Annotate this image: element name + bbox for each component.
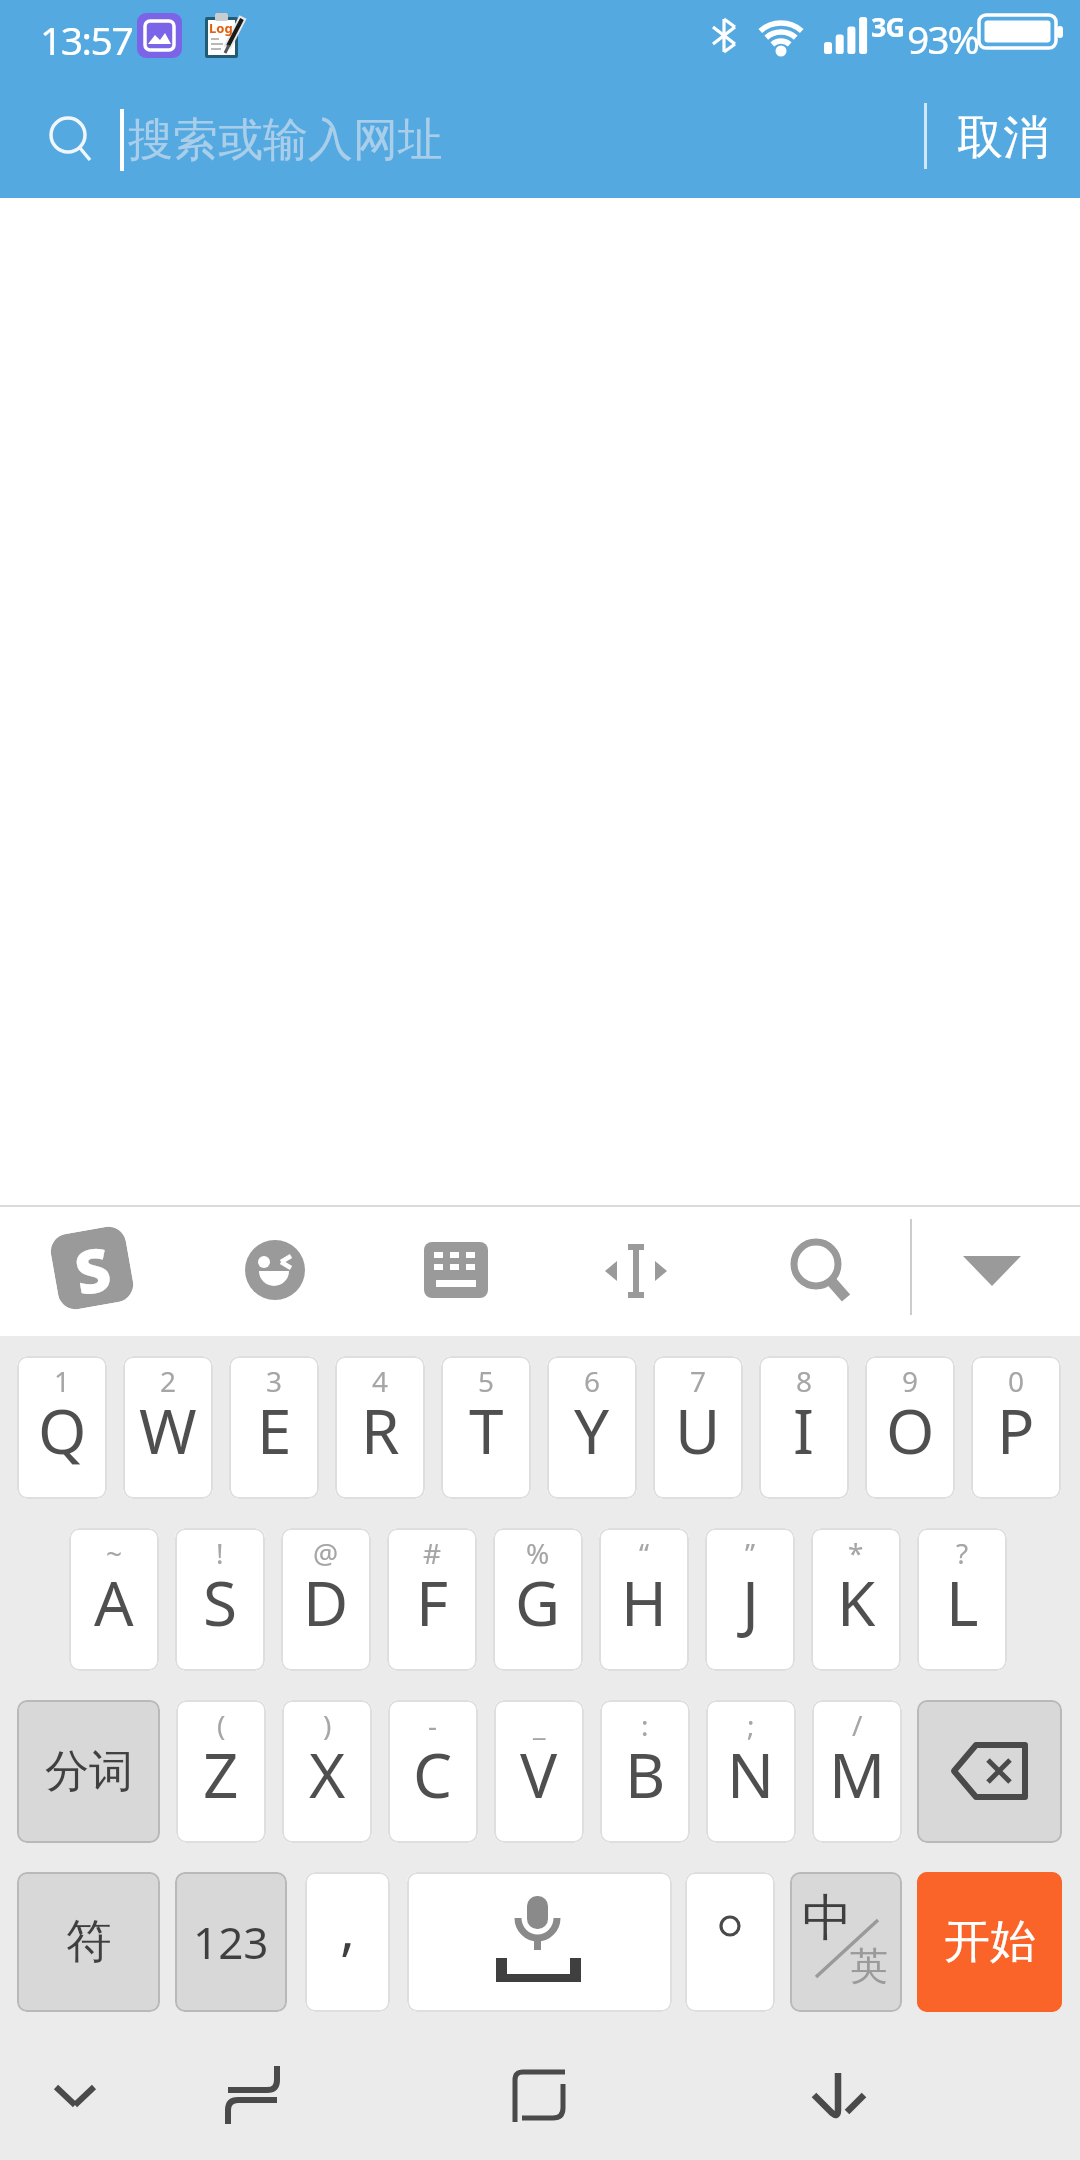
staticText: ” [745,1534,756,1572]
staticText: 英 [850,1942,888,1990]
button[interactable] [603,1242,669,1300]
staticText: 9 [902,1362,919,1400]
button[interactable]: ” [705,1528,795,1671]
button[interactable]: 7 [653,1356,743,1499]
staticText: - [428,1706,438,1744]
staticText: F [416,1560,449,1644]
button[interactable]: - [388,1700,478,1843]
button[interactable]: 符 [17,1872,160,2012]
button[interactable] [224,2062,284,2128]
button[interactable]: , [305,1872,390,2012]
button[interactable]: S [48,1224,136,1312]
staticText: 开始 [944,1913,1036,1971]
staticText: M [829,1732,886,1816]
staticText: 3G [871,8,904,45]
staticText: G [515,1560,561,1644]
button[interactable]: / [812,1700,902,1843]
button[interactable] [407,1872,672,2012]
button[interactable] [48,114,94,166]
staticText: ( [217,1706,226,1744]
staticText: Y [574,1388,610,1472]
button[interactable]: 6 [547,1356,637,1499]
button[interactable]: 123 [175,1872,287,2012]
button[interactable]: ! [175,1528,265,1671]
button[interactable] [788,1238,854,1304]
staticText: K [837,1560,876,1644]
staticText: ; [747,1706,755,1744]
staticText: Q [38,1388,87,1472]
button[interactable]: 1 [17,1356,107,1499]
staticText: S [203,1560,238,1644]
staticText: 分词 [45,1744,133,1799]
button[interactable] [512,2068,572,2126]
button[interactable]: 5 [441,1356,531,1499]
staticText: X [309,1732,346,1816]
staticText: W [139,1388,197,1472]
staticText: 5 [478,1362,495,1400]
staticText: 6 [584,1362,601,1400]
staticText: 123 [193,1912,269,1972]
staticText: 8 [796,1362,813,1400]
button[interactable]: 分词 [17,1700,160,1843]
button[interactable] [685,1872,775,2012]
button[interactable] [40,2066,110,2122]
button[interactable] [917,1700,1062,1843]
button[interactable] [810,2068,870,2126]
button[interactable] [960,1254,1026,1290]
staticText: O [886,1388,935,1472]
staticText: 搜索或输入网址 [128,112,443,169]
button[interactable]: ; [706,1700,796,1843]
staticText: V [520,1732,558,1816]
staticText: ) [323,1706,332,1744]
button[interactable]: 4 [335,1356,425,1499]
staticText: ! [216,1534,224,1572]
button[interactable]: _ [494,1700,584,1843]
button[interactable] [245,1240,305,1300]
staticText: L [946,1560,979,1644]
staticText: 0 [1008,1362,1025,1400]
staticText: # [423,1534,442,1572]
button[interactable]: ? [917,1528,1007,1671]
staticText: / [852,1706,863,1744]
staticText: H [621,1560,667,1644]
staticText: N [727,1732,775,1816]
button[interactable]: # [387,1528,477,1671]
staticText: C [413,1732,453,1816]
staticText: Log [209,19,233,37]
button[interactable] [424,1242,488,1298]
button[interactable]: 开始 [917,1872,1062,2012]
staticText: % [526,1534,550,1572]
staticText: 3 [266,1362,283,1400]
button[interactable]: 中 [790,1872,902,2012]
button[interactable]: : [600,1700,690,1843]
button[interactable]: ) [282,1700,372,1843]
staticText: 13:57 [40,13,133,66]
button[interactable]: “ [599,1528,689,1671]
staticText: _ [533,1706,546,1744]
button[interactable]: 8 [759,1356,849,1499]
staticText: 4 [372,1362,389,1400]
staticText: : [641,1706,649,1744]
button[interactable]: 取消 [938,100,1068,176]
staticText: ~ [106,1534,123,1572]
staticText: S [69,1227,116,1307]
button[interactable]: % [493,1528,583,1671]
button[interactable]: 3 [229,1356,319,1499]
button[interactable]: 2 [123,1356,213,1499]
staticText: 符 [66,1913,112,1971]
button[interactable]: 0 [971,1356,1061,1499]
staticText: 取消 [957,109,1049,167]
staticText: , [340,1890,356,1966]
staticText: ? [956,1534,969,1572]
staticText: U [675,1388,721,1472]
staticText: Z [203,1732,239,1816]
staticText: 2 [160,1362,177,1400]
button[interactable]: @ [281,1528,371,1671]
button[interactable]: ( [176,1700,266,1843]
button[interactable]: 9 [865,1356,955,1499]
button[interactable]: * [811,1528,901,1671]
staticText: J [742,1560,759,1644]
button[interactable]: ~ [69,1528,159,1671]
staticText: 1 [54,1362,71,1400]
staticText: @ [313,1534,339,1572]
